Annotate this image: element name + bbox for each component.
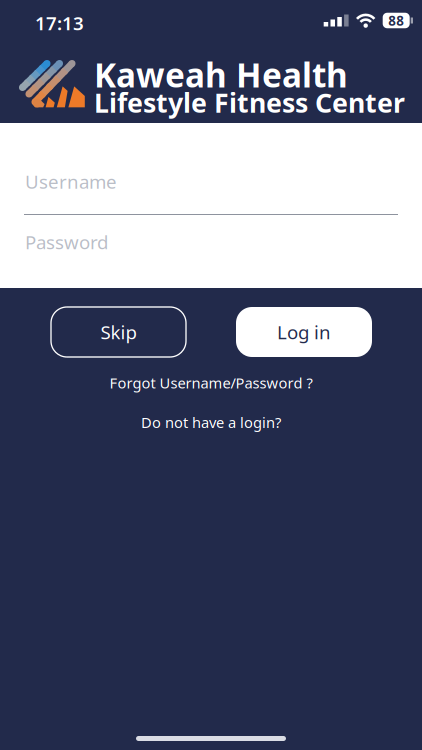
- staticText: Skip: [100, 320, 136, 344]
- button[interactable]: Password: [0, 227, 422, 257]
- staticText: 17:13: [35, 11, 84, 35]
- staticText: Kaweah Health: [94, 52, 348, 97]
- staticText: Do not have a login?: [141, 412, 281, 432]
- button[interactable]: Forgot Username/Password ?: [109, 373, 312, 392]
- staticText: Lifestyle Fitness Center: [94, 85, 405, 120]
- staticText: Log in: [277, 320, 331, 344]
- button[interactable]: Skip: [51, 307, 186, 357]
- staticText: Username: [25, 169, 117, 194]
- button[interactable]: Do not have a login?: [141, 412, 281, 432]
- staticText: Forgot Username/Password ?: [109, 373, 312, 392]
- staticText: Password: [25, 230, 108, 254]
- button[interactable]: Username: [0, 169, 422, 215]
- button[interactable]: Log in: [236, 307, 372, 357]
- staticText: 88: [388, 12, 404, 29]
